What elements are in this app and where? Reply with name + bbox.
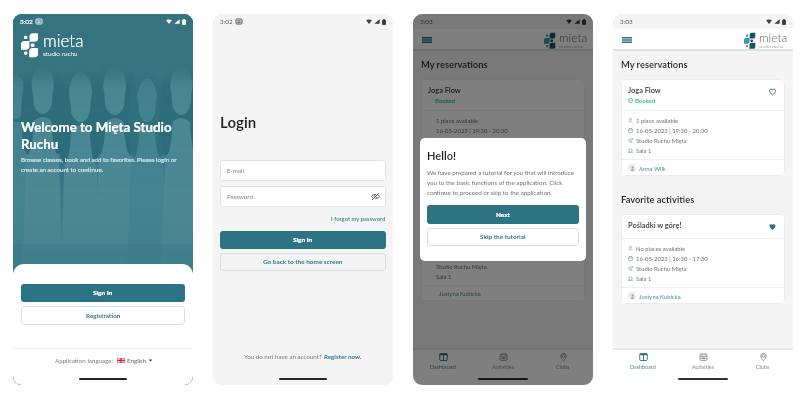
button[interactable]: Password (220, 186, 386, 207)
staticText: Browse classes, book and add to favorite… (21, 156, 185, 173)
button[interactable]: Go back to the home screen (220, 253, 386, 271)
staticText: Hello! (427, 149, 457, 162)
staticText: mieta (43, 30, 84, 50)
button[interactable]: I forgot my password (331, 215, 386, 222)
button[interactable]: Dashboard (613, 350, 673, 373)
staticText: Password (227, 193, 253, 200)
button[interactable]: Sign In (21, 284, 185, 302)
staticText: mieta (559, 30, 588, 44)
staticText: studio ruchu (759, 44, 784, 49)
staticText: Login (220, 113, 257, 131)
staticText: E-mail (227, 167, 244, 174)
button[interactable]: Favorite (767, 86, 778, 97)
staticText: Sala 1 (636, 147, 652, 154)
button[interactable]: Joga Flow (421, 79, 585, 301)
staticText: 1 place available (436, 117, 479, 124)
staticText: studio ruchu (43, 50, 78, 58)
staticText: Joga Flow (428, 86, 461, 95)
button[interactable]: Joga Flow (621, 79, 785, 176)
staticText: Anna Wilk (639, 165, 666, 172)
staticText: 3:03 (420, 18, 433, 26)
staticText: Joga Flow (628, 86, 661, 95)
staticText: studio ruchu (559, 44, 584, 49)
staticText: Studio Ruchu Mięta (436, 263, 487, 270)
button[interactable]: E-mail (220, 160, 386, 181)
staticText: Justyna Kubicka (639, 293, 681, 300)
staticText: I forgot my password (331, 215, 386, 222)
staticText: We have prepared a tutorial for you that… (427, 169, 579, 197)
staticText: Skip the tutorial (480, 233, 526, 241)
button[interactable]: Next (427, 205, 579, 224)
staticText: Activities (692, 364, 715, 370)
staticText: Sign In (293, 236, 313, 244)
button[interactable]: Menu (420, 33, 433, 46)
button[interactable]: Dashboard (413, 350, 473, 373)
staticText: Register now. (324, 353, 362, 360)
staticText: No places available (636, 245, 686, 252)
button[interactable]: Register now. (324, 353, 362, 360)
button[interactable]: Menu (620, 33, 633, 46)
staticText: 3:03 (620, 18, 633, 26)
staticText: Booked (635, 97, 656, 104)
staticText: 16-05-2023 | 19:30 - 20:30 (636, 127, 708, 134)
staticText: Clubs (756, 364, 770, 370)
button[interactable]: Activities (473, 350, 533, 373)
button[interactable]: Pośladki w górę! (621, 214, 785, 304)
staticText: Sala 1 (636, 275, 652, 282)
staticText: Registration (86, 312, 121, 320)
staticText: 16-05-2023 | 19:30 - 20:30 (436, 127, 508, 134)
staticText: You do not have an account? (244, 353, 322, 360)
button[interactable]: Skip the tutorial (427, 228, 579, 246)
staticText: English (127, 357, 147, 364)
staticText: mieta (759, 30, 788, 44)
staticText: Welcome to Mięta Studio Ruchu (21, 119, 185, 152)
staticText: My reservations (421, 59, 488, 70)
staticText: Justyna Kubicka (439, 290, 481, 297)
button[interactable]: Activities (673, 350, 733, 373)
staticText: 3:02 (220, 18, 233, 26)
staticText: 16-05-2023 | 16:30 - 17:30 (636, 255, 708, 262)
staticText: Clubs (556, 364, 570, 370)
staticText: Dashboard (630, 364, 656, 370)
staticText: Activities (492, 364, 515, 370)
button[interactable]: Clubs (733, 350, 793, 373)
button[interactable]: Registration (21, 306, 185, 325)
staticText: Pośladki w górę! (628, 221, 682, 230)
staticText: Application language: (55, 357, 114, 364)
staticText: Studio Ruchu Mięta (636, 265, 687, 272)
staticText: My reservations (621, 59, 688, 70)
staticText: Next (496, 211, 510, 219)
staticText: 3:02 (20, 18, 33, 26)
staticText: Booked (435, 97, 456, 104)
button[interactable]: Sign In (220, 231, 386, 249)
staticText: Studio Ruchu Mięta (636, 137, 687, 144)
staticText: Dashboard (430, 364, 456, 370)
staticText: 1 place available (636, 117, 679, 124)
button[interactable]: Show password (371, 192, 380, 201)
staticText: Favorite activities (621, 194, 695, 205)
staticText: Go back to the home screen (263, 258, 343, 266)
staticText: Sign In (93, 289, 113, 297)
staticText: Sala 1 (436, 273, 452, 280)
button[interactable]: Clubs (533, 350, 593, 373)
button[interactable]: Favorite (767, 221, 778, 232)
